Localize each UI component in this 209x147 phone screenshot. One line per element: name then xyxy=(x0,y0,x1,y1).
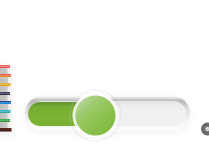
button[interactable]: Toggle switch, on xyxy=(25,96,190,131)
